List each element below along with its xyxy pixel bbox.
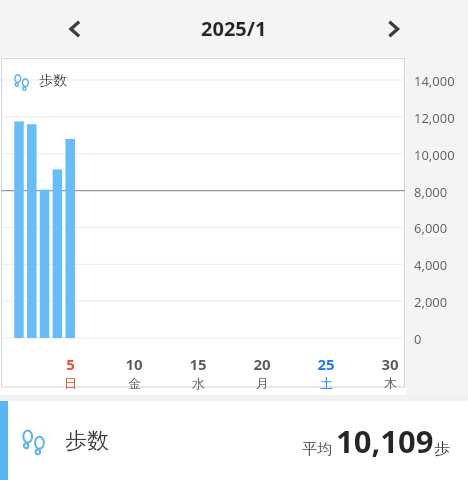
staticText: 20 — [253, 354, 271, 374]
staticText: 4,000 — [414, 256, 448, 274]
staticText: 歩数 — [65, 427, 109, 455]
staticText: 15 — [189, 354, 207, 374]
staticText: 30 — [381, 354, 399, 374]
staticText: 10,109 — [336, 420, 434, 462]
staticText: 5 — [66, 354, 75, 374]
staticText: 6,000 — [414, 219, 448, 237]
staticText: 10 — [125, 354, 143, 374]
staticText: 平均 — [302, 440, 332, 459]
staticText: 木 — [384, 375, 397, 391]
staticText: 歩数 — [39, 72, 67, 90]
staticText: 2025/1 — [201, 15, 267, 42]
button[interactable]: Next month — [364, 4, 422, 54]
staticText: 金 — [128, 375, 141, 391]
staticText: 歩 — [434, 439, 450, 459]
staticText: 10,000 — [414, 146, 455, 164]
staticText: 12,000 — [414, 109, 455, 127]
staticText: 8,000 — [414, 183, 448, 201]
staticText: 日 — [64, 375, 77, 391]
staticText: 月 — [256, 375, 269, 391]
button[interactable]: 歩数 — [0, 401, 468, 480]
staticText: 水 — [192, 375, 205, 391]
button[interactable]: Previous month — [46, 4, 104, 54]
staticText: 0 — [414, 330, 422, 348]
staticText: 土 — [320, 375, 333, 391]
staticText: 2,000 — [414, 293, 448, 311]
staticText: 25 — [317, 354, 335, 374]
staticText: 14,000 — [414, 72, 455, 90]
